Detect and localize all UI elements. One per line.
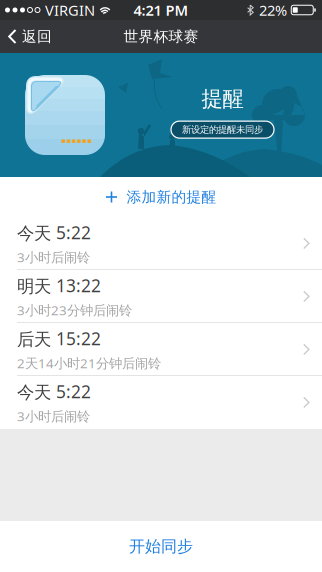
button[interactable]: 开始同步 bbox=[0, 521, 322, 572]
staticText: 明天 13:22 bbox=[17, 274, 101, 297]
staticText: 4:21 PM bbox=[133, 0, 188, 20]
staticText: 3小时后闹铃 bbox=[17, 248, 90, 266]
staticText: 提醒 bbox=[201, 86, 243, 112]
button[interactable]: 后天 15:22 bbox=[0, 323, 322, 376]
button[interactable]: 返回 bbox=[0, 20, 60, 53]
staticText: 世界杯球赛 bbox=[123, 27, 198, 45]
staticText: 3小时后闹铃 bbox=[17, 407, 90, 425]
staticText: 今天 5:22 bbox=[17, 221, 91, 244]
staticText: 3小时23分钟后闹铃 bbox=[17, 301, 132, 319]
staticText: 后天 15:22 bbox=[17, 327, 101, 350]
button[interactable]: 明天 13:22 bbox=[0, 270, 322, 323]
staticText: 2天14小时21分钟后闹铃 bbox=[17, 354, 161, 372]
staticText: VIRGIN bbox=[45, 0, 95, 20]
button[interactable]: 今天 5:22 bbox=[0, 376, 322, 429]
button[interactable]: 今天 5:22 bbox=[0, 217, 322, 270]
staticText: 新设定的提醒未同步 bbox=[182, 124, 263, 135]
staticText: 开始同步 bbox=[129, 537, 193, 556]
staticText: 添加新的提醒 bbox=[126, 188, 216, 206]
button[interactable]: 添加新的提醒 bbox=[0, 177, 322, 217]
staticText: 返回 bbox=[22, 27, 52, 45]
staticText: 今天 5:22 bbox=[17, 380, 91, 403]
staticText: 22% bbox=[259, 0, 287, 20]
